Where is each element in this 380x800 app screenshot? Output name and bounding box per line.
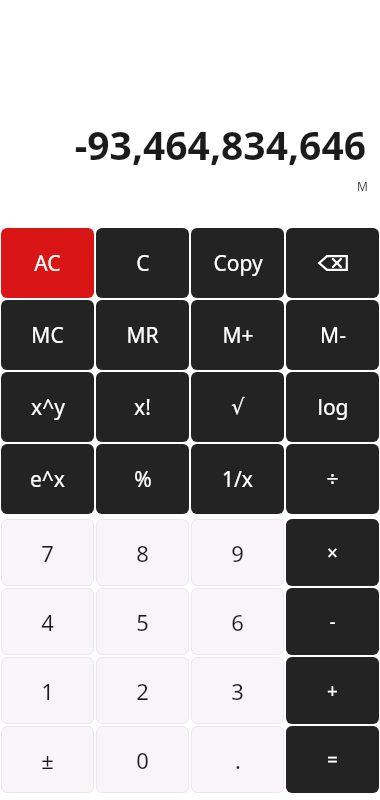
staticText: log [317, 393, 349, 422]
button[interactable]: Backspace [286, 228, 379, 298]
staticText: M- [320, 321, 346, 350]
button[interactable]: - [286, 588, 379, 655]
staticText: MC [31, 321, 64, 350]
staticText: C [136, 249, 150, 278]
button[interactable]: log [286, 372, 379, 442]
staticText: + [327, 678, 338, 704]
staticText: 1/x [222, 465, 253, 494]
button[interactable]: 5 [96, 588, 189, 655]
staticText: x^y [31, 393, 65, 422]
staticText: ÷ [326, 465, 339, 494]
staticText: 1 [41, 676, 54, 706]
staticText: 2 [136, 676, 149, 706]
button[interactable]: 1 [1, 657, 94, 724]
staticText: -93,464,834,646 [74, 118, 366, 171]
staticText: 9 [231, 538, 244, 568]
staticText: Copy [213, 249, 263, 278]
staticText: 5 [136, 607, 149, 637]
button[interactable]: C [96, 228, 189, 298]
staticText: AC [34, 249, 61, 278]
staticText: 8 [136, 538, 149, 568]
button[interactable]: . [191, 726, 284, 793]
button[interactable]: 3 [191, 657, 284, 724]
button[interactable]: 9 [191, 519, 284, 586]
button[interactable]: AC [1, 228, 94, 298]
staticText: 6 [231, 607, 244, 637]
button[interactable]: M+ [191, 300, 284, 370]
staticText: 0 [136, 745, 149, 775]
button[interactable]: ± [1, 726, 94, 793]
button[interactable]: 8 [96, 519, 189, 586]
staticText: . [235, 745, 241, 775]
button[interactable]: √ [191, 372, 284, 442]
staticText: √ [231, 395, 245, 419]
staticText: e^x [30, 465, 65, 494]
staticText: = [327, 747, 338, 773]
staticText: - [329, 609, 336, 635]
button[interactable]: + [286, 657, 379, 724]
staticText: x! [134, 393, 151, 422]
button[interactable]: MR [96, 300, 189, 370]
button[interactable]: 1/x [191, 444, 284, 514]
staticText: MR [126, 321, 159, 350]
button[interactable]: M- [286, 300, 379, 370]
staticText: 7 [41, 538, 54, 568]
button[interactable]: = [286, 726, 379, 793]
staticText: × [327, 540, 338, 566]
staticText: ± [41, 745, 54, 775]
button[interactable]: x^y [1, 372, 94, 442]
button[interactable]: 0 [96, 726, 189, 793]
button[interactable]: MC [1, 300, 94, 370]
button[interactable]: % [96, 444, 189, 514]
staticText: 4 [41, 607, 54, 637]
button[interactable]: 7 [1, 519, 94, 586]
staticText: M [357, 178, 368, 194]
staticText: % [134, 465, 152, 494]
staticText: M+ [222, 321, 254, 350]
button[interactable]: × [286, 519, 379, 586]
button[interactable]: Copy [191, 228, 284, 298]
button[interactable]: 2 [96, 657, 189, 724]
button[interactable]: e^x [1, 444, 94, 514]
button[interactable]: x! [96, 372, 189, 442]
button[interactable]: ÷ [286, 444, 379, 514]
button[interactable]: 4 [1, 588, 94, 655]
staticText: 3 [231, 676, 244, 706]
button[interactable]: 6 [191, 588, 284, 655]
